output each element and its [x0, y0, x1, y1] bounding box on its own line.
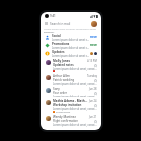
- staticText: new: [90, 43, 97, 47]
- staticText: Arthur Allen: [53, 74, 86, 78]
- staticText: Mathis Adams - Mathison: [53, 99, 88, 103]
- button[interactable]: Star: [94, 92, 97, 95]
- staticText: Flight confirmation: [53, 119, 93, 123]
- staticText: Workshop invitation: [53, 103, 93, 107]
- staticText: Lorem ipsum dolor sit amet, consectetur …: [53, 107, 97, 110]
- staticText: Wendy Martinez: [53, 115, 88, 119]
- staticText: Presentation: [56, 110, 71, 113]
- staticText: Updates: [52, 50, 65, 54]
- staticText: Lorem ipsum dolor sit amet, consectetur …: [53, 82, 97, 85]
- staticText: Jun 24: [89, 99, 97, 103]
- button[interactable]: Star: [94, 104, 97, 107]
- staticText: Lorem ipsum dolor sit amet consec: [52, 46, 89, 49]
- staticText: Patrick wedding: [53, 78, 93, 82]
- staticText: Lorem ipsum dolor sit amet consectetur a…: [44, 27, 97, 30]
- staticText: Molly Jones: [53, 59, 86, 63]
- staticText: Sony: [53, 87, 88, 91]
- button[interactable]: Star: [94, 120, 97, 123]
- button[interactable]: Promotions: [41, 41, 101, 49]
- button[interactable]: Sony: [41, 85, 101, 97]
- staticText: TODO list: [56, 70, 67, 72]
- staticText: Lorem ipsum dolor sit amet conse: [52, 54, 89, 57]
- staticText: Tuesday: [87, 74, 97, 78]
- button[interactable]: Updates: [41, 49, 101, 57]
- staticText: Promotions: [52, 42, 70, 46]
- staticText: new: [90, 35, 97, 39]
- staticText: 9:41: [50, 14, 56, 18]
- staticText: Your order: [53, 91, 93, 95]
- button[interactable]: Menu: [41, 20, 101, 27]
- staticText: Social: [52, 34, 61, 38]
- staticText: Updated notes: [53, 63, 93, 67]
- staticText: Lorem ipsum dolor sit amet, consectetur …: [53, 123, 97, 126]
- staticText: Search in mail: [50, 22, 71, 26]
- button[interactable]: Arthur Allen: [41, 72, 101, 85]
- button[interactable]: Molly Jones: [41, 57, 101, 72]
- staticText: Lorem ipsum dolor sit amet consec: [52, 38, 89, 41]
- button[interactable]: Account: [91, 21, 97, 27]
- staticText: Jun 28: [89, 87, 97, 91]
- staticText: Lorem ipsum dolor sit amet, consectetur …: [53, 67, 97, 70]
- staticText: PRIMARY: [44, 30, 55, 33]
- button[interactable]: Mathis Adams - Mathison: [41, 97, 101, 113]
- button[interactable]: Star: [94, 64, 97, 67]
- staticText: Jun 21: [89, 115, 97, 119]
- staticText: Lorem ipsum dolor sit amet, consectetur …: [53, 95, 97, 97]
- button[interactable]: Wendy Martinez: [41, 113, 101, 126]
- staticText: 4:13 PM: [87, 59, 97, 63]
- button[interactable]: Star: [94, 79, 97, 82]
- button[interactable]: Social: [41, 33, 101, 41]
